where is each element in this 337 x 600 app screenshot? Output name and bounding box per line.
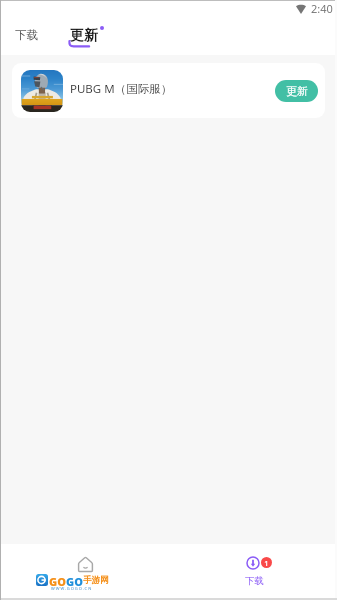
staticText: 1 (264, 558, 269, 568)
button[interactable]: 下载 (7, 23, 46, 47)
button[interactable]: 更新 (64, 21, 106, 51)
button[interactable]: Home (70, 549, 100, 579)
staticText: WWW.GOGO.CN (51, 586, 93, 591)
staticText: 更新 (286, 84, 308, 98)
staticText: PUBG M（国际服） (70, 81, 173, 97)
staticText: 2:40 (311, 1, 333, 16)
staticText: GO (66, 574, 83, 589)
staticText: 手游网 (83, 575, 109, 586)
staticText: 下载 (245, 575, 264, 587)
button[interactable]: 1 (238, 550, 278, 594)
staticText: 更新 (70, 27, 98, 45)
button[interactable]: 更新 (275, 80, 318, 102)
staticText: GO (49, 574, 66, 589)
button[interactable]: PUBG M（国际服） (12, 63, 325, 118)
staticText: 下载 (15, 28, 38, 42)
